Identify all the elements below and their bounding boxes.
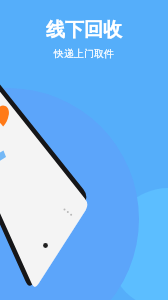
staticText: 线下回收 [46,18,122,42]
staticText: 快递上门取件 [54,47,114,60]
